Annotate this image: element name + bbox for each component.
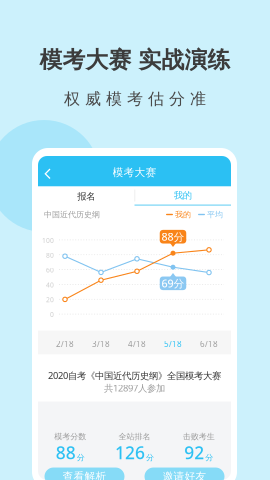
staticText: 模考分数 xyxy=(54,432,86,441)
staticText: 92 xyxy=(184,441,204,464)
staticText: 全站排名 xyxy=(118,432,150,441)
staticText: 共12897人参加 xyxy=(104,382,165,394)
staticText: 2020自考《中国近代历史纲》全国模考大赛 xyxy=(48,369,221,382)
staticText: 分 xyxy=(146,453,154,462)
staticText: 100 xyxy=(42,236,54,245)
staticText: 模考大赛 xyxy=(112,166,156,179)
staticText: 权 威 模 考 估 分 准 xyxy=(64,89,206,109)
staticText: 69分 xyxy=(161,276,184,290)
staticText: 126 xyxy=(115,441,145,464)
staticText: 报名 xyxy=(77,191,95,202)
staticText: 分 xyxy=(77,453,85,462)
staticText: 我的 xyxy=(175,210,191,219)
staticText: 60 xyxy=(46,266,54,274)
staticText: 模考大赛 实战演练 xyxy=(39,46,230,74)
staticText: 击败考生 xyxy=(183,432,215,441)
staticText: 40 xyxy=(46,280,54,289)
staticText: 88 xyxy=(56,441,76,464)
button[interactable]: 返回 xyxy=(38,148,60,186)
staticText: 20 xyxy=(46,295,54,304)
staticText: 我的 xyxy=(174,190,192,201)
staticText: 0 xyxy=(50,310,54,319)
staticText: 5/18 xyxy=(164,339,182,349)
staticText: 3/18 xyxy=(92,339,110,349)
button[interactable]: 报名 xyxy=(38,186,134,206)
button[interactable]: 查看解析 xyxy=(44,467,124,480)
staticText: 平均 xyxy=(207,210,223,219)
staticText: 88分 xyxy=(161,230,184,244)
staticText: 4/18 xyxy=(128,339,146,349)
button[interactable]: 我的 xyxy=(134,186,231,206)
staticText: 分 xyxy=(205,453,213,462)
button[interactable]: 邀请好友 xyxy=(144,467,224,480)
staticText: 查看解析 xyxy=(62,470,106,480)
staticText: 邀请好友 xyxy=(162,470,206,480)
staticText: 6/18 xyxy=(200,339,218,349)
staticText: 中国近代历史纲 xyxy=(44,210,100,219)
staticText: 80 xyxy=(46,251,54,260)
staticText: 2/18 xyxy=(56,339,74,349)
